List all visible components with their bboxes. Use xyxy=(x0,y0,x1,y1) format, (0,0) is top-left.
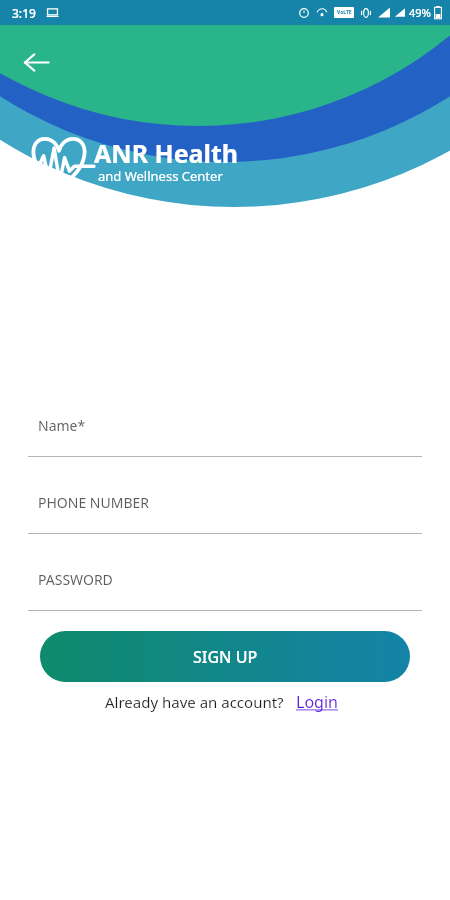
staticText: 49% xyxy=(409,5,431,20)
button[interactable]: Login xyxy=(288,688,346,716)
staticText: Login xyxy=(296,691,338,713)
staticText: Name* xyxy=(38,416,86,435)
staticText: VoLTE xyxy=(337,9,352,16)
staticText: 3:19 xyxy=(12,5,36,21)
staticText: Already have an account? xyxy=(105,692,284,712)
button[interactable]: PHONE NUMBER xyxy=(28,493,422,534)
staticText: and Wellness Center xyxy=(98,167,223,185)
button[interactable]: Name* xyxy=(28,416,422,457)
button[interactable]: Back xyxy=(14,40,58,84)
button[interactable]: SIGN UP xyxy=(40,631,410,682)
staticText: PHONE NUMBER xyxy=(38,493,150,512)
staticText: ANR Health xyxy=(94,136,239,170)
staticText: PASSWORD xyxy=(38,570,113,589)
button[interactable]: PASSWORD xyxy=(28,570,422,611)
staticText: SIGN UP xyxy=(193,646,258,668)
